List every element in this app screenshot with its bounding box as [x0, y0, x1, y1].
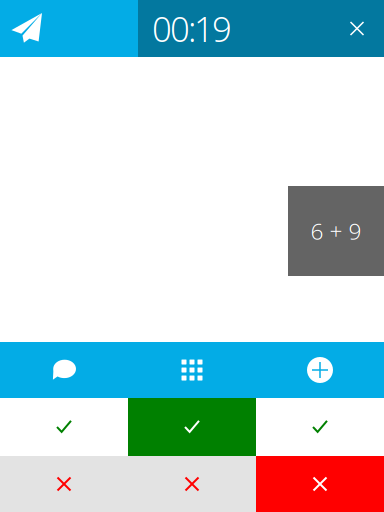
button[interactable]: Keypad [128, 342, 256, 398]
button[interactable]: Correct [0, 398, 128, 456]
button[interactable]: Correct [256, 398, 384, 456]
staticText: 00:19 [152, 5, 232, 51]
button[interactable]: Messages [0, 342, 128, 398]
button[interactable]: Send [0, 0, 138, 57]
staticText: 6 + 9 [310, 216, 361, 246]
button[interactable]: Add [256, 342, 384, 398]
button[interactable]: Wrong [0, 456, 128, 512]
button[interactable]: Wrong [128, 456, 256, 512]
button[interactable]: Wrong [256, 456, 384, 512]
button[interactable]: Correct [128, 398, 256, 456]
button[interactable]: Close [330, 0, 384, 57]
